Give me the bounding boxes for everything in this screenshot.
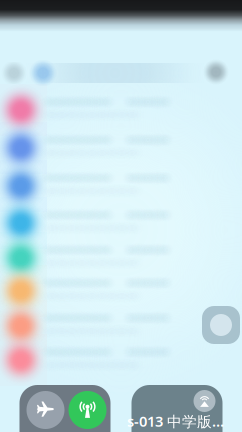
- button[interactable]: AirPlay: [193, 390, 215, 412]
- button[interactable]: Control: [202, 306, 240, 344]
- button[interactable]: Cellular Data: [68, 391, 106, 429]
- button[interactable]: Airplane Mode: [26, 391, 64, 429]
- staticText: s-013 中学版…: [127, 411, 224, 431]
